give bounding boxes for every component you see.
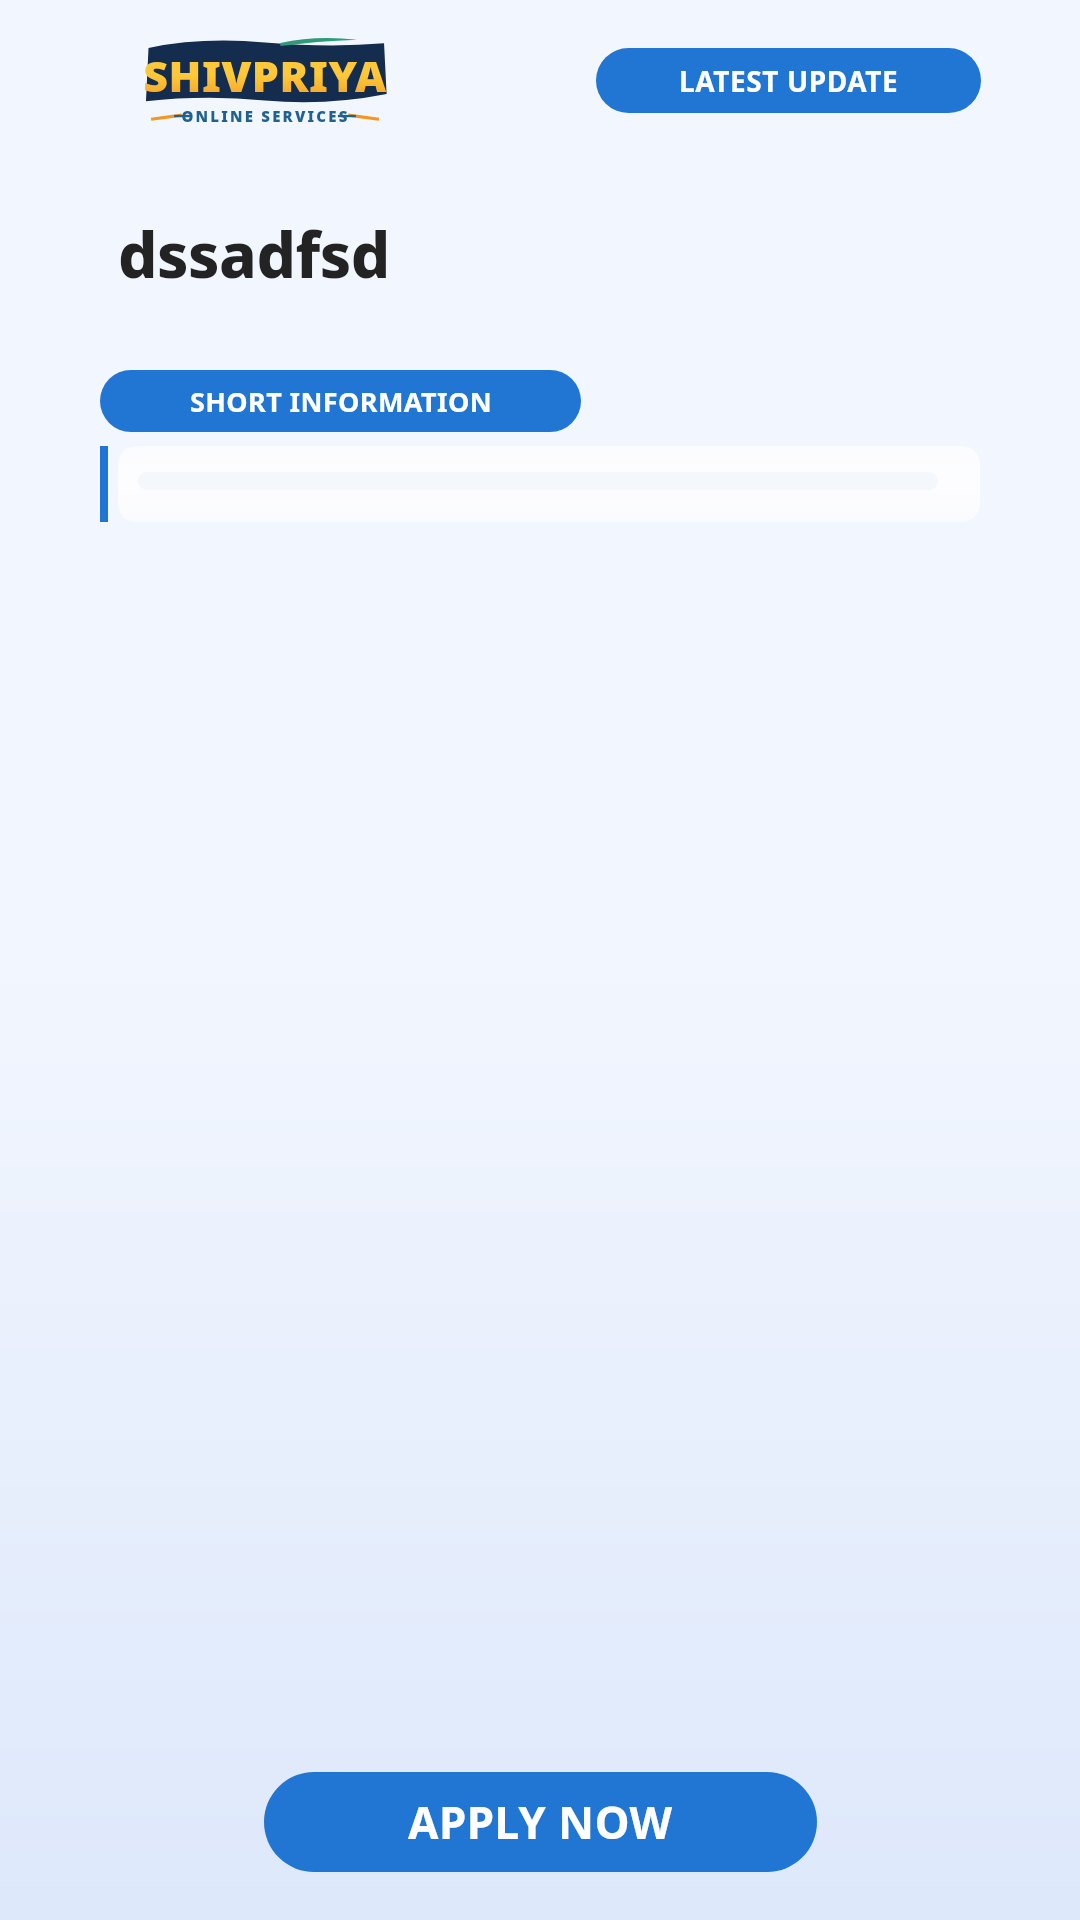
button[interactable]: SHORT INFORMATION xyxy=(100,370,581,432)
staticText: dssadfsd xyxy=(118,212,390,296)
staticText: SHORT INFORMATION xyxy=(190,383,492,420)
button[interactable]: APPLY NOW xyxy=(264,1772,817,1872)
staticText: ONLINE SERVICES xyxy=(181,106,350,126)
other: Shivpriya Online Services logo xyxy=(137,36,393,128)
staticText: SHIVPRIYA xyxy=(143,46,387,105)
staticText: APPLY NOW xyxy=(408,1792,673,1852)
button[interactable]: LATEST UPDATE xyxy=(596,48,981,113)
staticText: LATEST UPDATE xyxy=(679,62,899,100)
